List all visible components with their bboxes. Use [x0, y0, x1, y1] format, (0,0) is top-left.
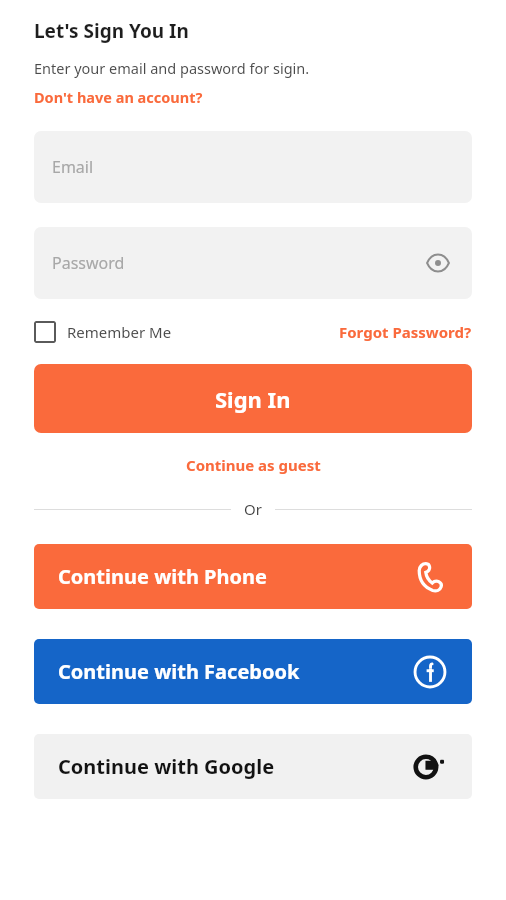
button[interactable]: Password — [34, 227, 472, 299]
staticText: Continue with Phone — [58, 563, 267, 590]
button[interactable]: Continue as guest — [34, 455, 472, 475]
staticText: Continue as guest — [186, 455, 321, 475]
staticText: Continue with Facebook — [58, 658, 300, 685]
staticText: Enter your email and password for sigin. — [34, 58, 310, 78]
button[interactable]: Continue with Google — [34, 734, 472, 799]
staticText: Let's Sign You In — [34, 18, 189, 44]
button[interactable]: Remember Me — [34, 321, 172, 343]
button[interactable]: Continue with Phone — [34, 544, 472, 609]
button[interactable]: Sign In — [34, 364, 472, 433]
button[interactable]: Continue with Facebook — [34, 639, 472, 704]
staticText: Remember Me — [67, 322, 172, 342]
button[interactable]: Email — [34, 131, 472, 203]
button[interactable]: Show password — [422, 247, 454, 279]
staticText: Forgot Password? — [339, 322, 472, 342]
button[interactable]: Forgot Password? — [339, 322, 472, 342]
button[interactable]: Don't have an account? — [34, 87, 203, 107]
staticText: Don't have an account? — [34, 87, 203, 107]
staticText: Sign In — [215, 384, 291, 414]
staticText: Continue with Google — [58, 753, 275, 780]
staticText: Password — [52, 252, 125, 274]
staticText: Or — [244, 499, 262, 519]
staticText: Email — [52, 156, 94, 178]
